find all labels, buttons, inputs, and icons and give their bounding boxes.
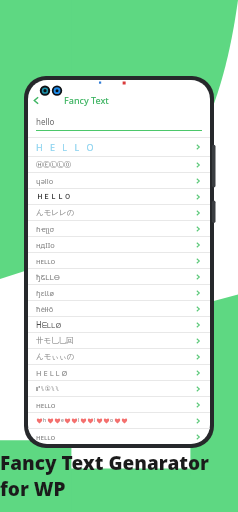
other: Open: [194, 321, 202, 329]
other: Open: [194, 209, 202, 217]
button[interactable]: ɥǝllo: [28, 172, 210, 188]
button[interactable]: んモぃぃの: [28, 348, 210, 364]
other: Open: [194, 257, 202, 265]
staticText: e: [61, 417, 64, 424]
staticText: んモぃぃの: [36, 352, 194, 361]
staticText: ђᏋᏞᏞᎾ: [36, 272, 194, 282]
staticText: んモレレの: [36, 208, 194, 217]
staticText: l: [94, 417, 96, 424]
staticText: ⒽⒺⓁⓁⓄ: [36, 160, 194, 169]
staticText: ᕼᗴᏞᏞØ: [36, 320, 194, 330]
button[interactable]: ђᏋᏞᏞᎾ: [28, 268, 210, 284]
button[interactable]: んモレレの: [28, 204, 210, 220]
staticText: ＨＥＬＬＯ: [36, 192, 194, 201]
button[interactable]: нᴇʟʟᴏ: [28, 252, 210, 268]
staticText: Fancy Text: [64, 94, 109, 106]
button[interactable]: H E L L O: [28, 137, 210, 156]
staticText: hello: [36, 116, 55, 127]
staticText: Fancy Text Genarator for WP: [0, 450, 238, 502]
other: Open: [194, 337, 202, 345]
button[interactable]: ɦҽʅʅσ: [28, 220, 210, 236]
button[interactable]: ħėłłō: [28, 300, 210, 316]
button[interactable]: ＨＥＬＬＯ: [28, 188, 210, 204]
staticText: ħėłłō: [36, 304, 194, 314]
other: Open: [194, 241, 202, 249]
other: Open: [194, 143, 202, 151]
button[interactable]: ɧɛƖƖø: [28, 284, 210, 300]
button[interactable]: Back: [28, 92, 44, 108]
other: Open: [194, 273, 202, 281]
other: Open: [194, 161, 202, 169]
staticText: ⑈⑊①⑊⑊: [36, 385, 194, 393]
button[interactable]: ⑈⑊①⑊⑊: [28, 380, 210, 396]
button[interactable]: h: [28, 412, 210, 428]
staticText: ɦҽʅʅσ: [36, 224, 194, 234]
staticText: ндӏӏо: [36, 240, 194, 250]
other: Open: [194, 417, 202, 425]
button[interactable]: ндӏӏо: [28, 236, 210, 252]
other: Open: [194, 193, 202, 201]
other: Open: [194, 433, 202, 441]
other: Open: [194, 401, 202, 409]
button[interactable]: ʜᴇʟʟᴏ: [28, 396, 210, 412]
other: Open: [194, 305, 202, 313]
button[interactable]: H E L L Ø: [28, 364, 210, 380]
other: Open: [194, 353, 202, 361]
button[interactable]: ⒽⒺⓁⓁⓄ: [28, 156, 210, 172]
staticText: l: [78, 417, 80, 424]
other: Open: [194, 177, 202, 185]
staticText: h: [43, 417, 47, 424]
other: Open: [194, 385, 202, 393]
staticText: нᴇʟʟᴏ: [36, 256, 194, 266]
other: Open: [194, 289, 202, 297]
staticText: H E L L Ø: [36, 368, 194, 378]
button[interactable]: нᴇʟʟᴏ: [28, 428, 210, 444]
staticText: H E L L O: [36, 141, 194, 153]
staticText: ɧɛƖƖø: [36, 288, 194, 298]
other: Open: [194, 225, 202, 233]
button[interactable]: ᕼᗴᏞᏞØ: [28, 316, 210, 332]
staticText: ʜᴇʟʟᴏ: [36, 400, 194, 410]
staticText: ɥǝllo: [36, 176, 194, 186]
other: Open: [194, 369, 202, 377]
button[interactable]: 卄モ乚乚回: [28, 332, 210, 348]
staticText: o: [110, 417, 114, 424]
staticText: 卄モ乚乚回: [36, 336, 194, 345]
staticText: нᴇʟʟᴏ: [36, 432, 194, 442]
